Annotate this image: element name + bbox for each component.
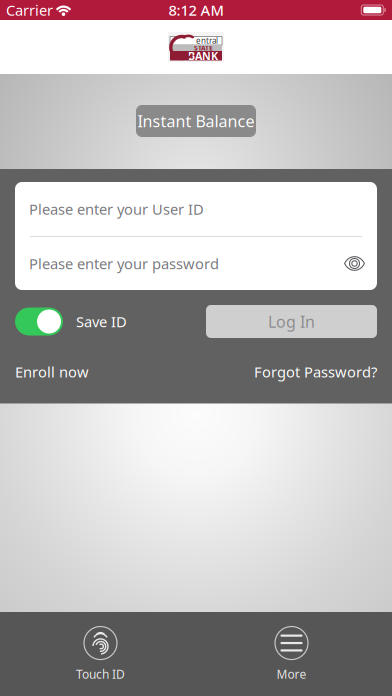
staticText: STATE	[194, 44, 213, 52]
button[interactable]: Save ID	[15, 307, 127, 335]
button[interactable]: Enroll now	[15, 362, 89, 381]
button[interactable]: More	[196, 612, 387, 696]
staticText: Log In	[268, 311, 315, 332]
staticText: Forgot Password?	[254, 362, 377, 381]
button[interactable]: Instant Balance	[136, 105, 256, 137]
staticText: More	[276, 666, 306, 682]
staticText: Instant Balance	[137, 110, 254, 132]
staticText: entral	[196, 35, 218, 46]
staticText: 8:12 AM	[168, 0, 223, 20]
staticText: Please enter your password	[29, 254, 219, 273]
staticText: Please enter your User ID	[29, 199, 204, 219]
button[interactable]: Please enter your password	[15, 237, 377, 290]
staticText: Carrier	[6, 0, 53, 20]
staticText: Enroll now	[15, 362, 89, 381]
staticText: Save ID	[76, 312, 127, 331]
button[interactable]: Touch ID	[5, 612, 196, 696]
staticText: Touch ID	[76, 666, 125, 682]
staticText: BANK	[188, 49, 218, 63]
button[interactable]: Log In	[206, 305, 377, 338]
button[interactable]: Please enter your User ID	[15, 182, 377, 236]
button[interactable]: Forgot Password?	[254, 362, 377, 381]
